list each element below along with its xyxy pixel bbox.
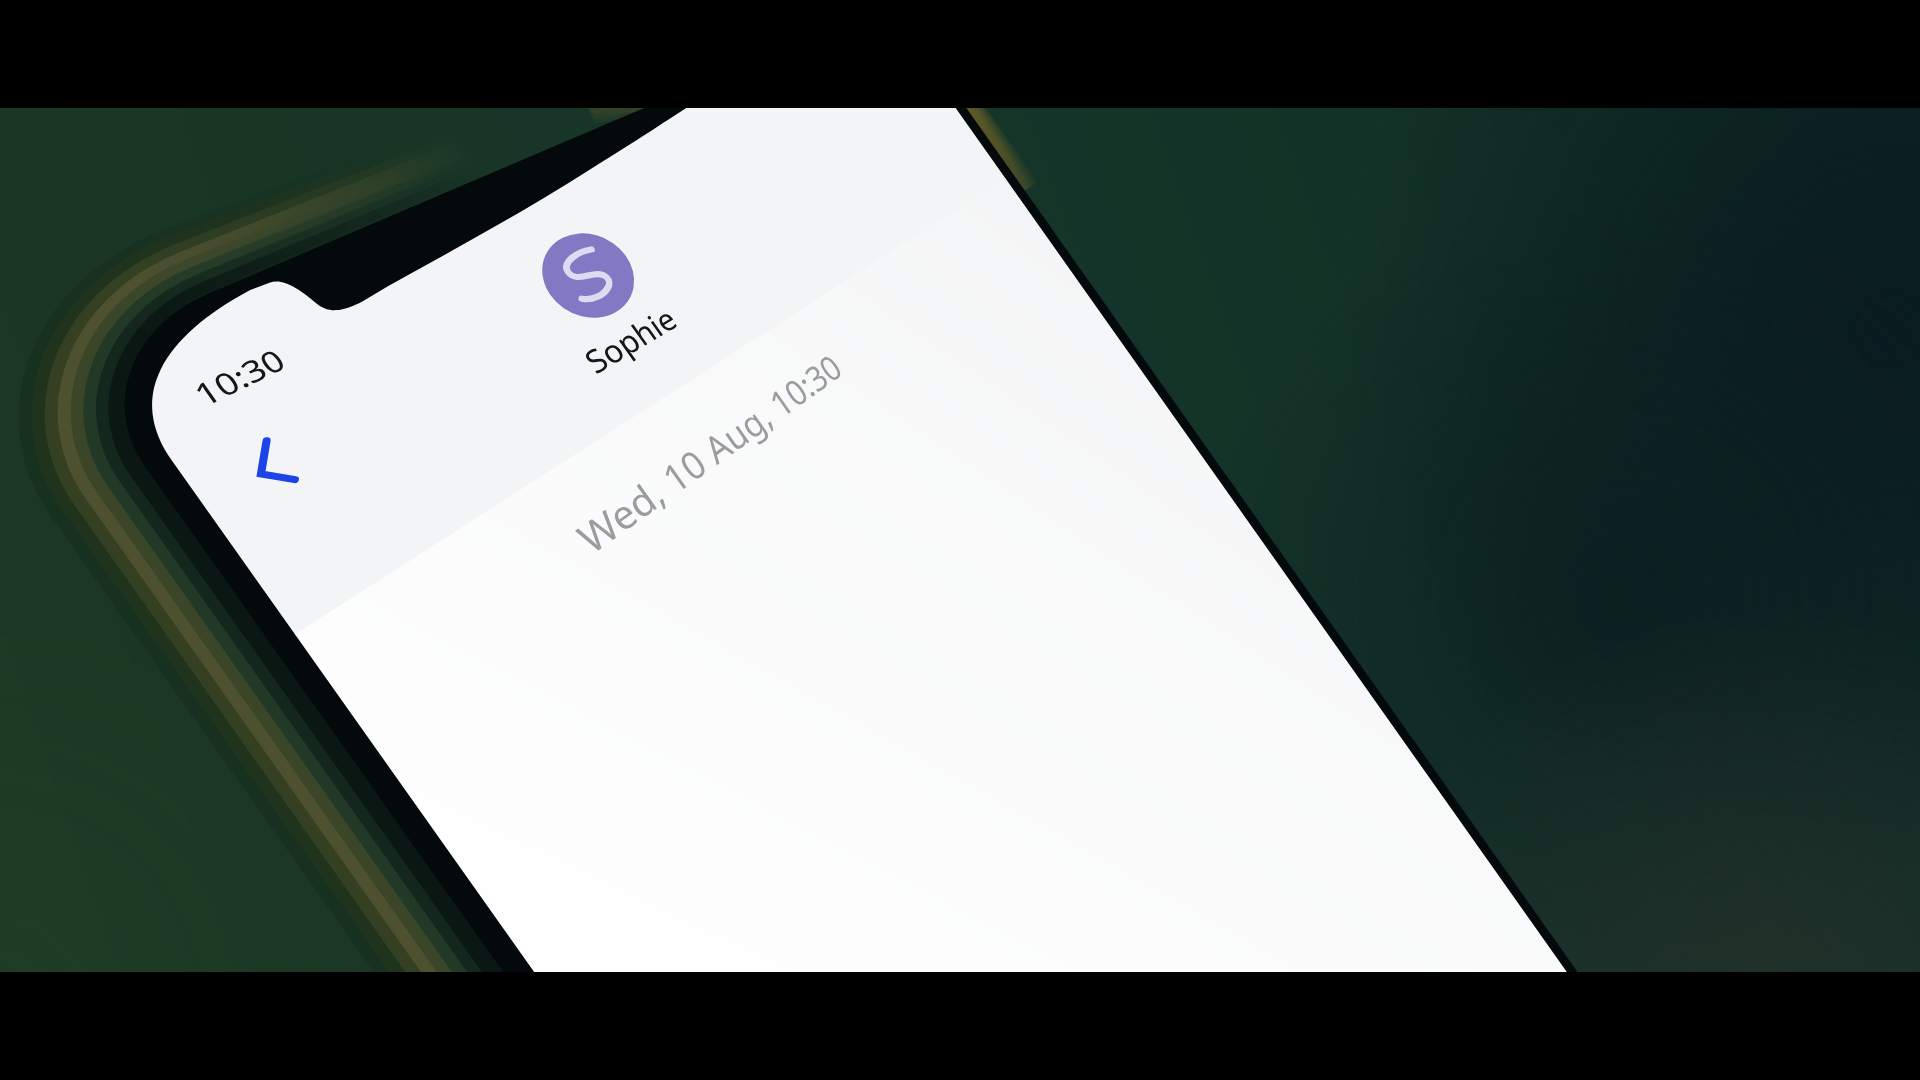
button[interactable]: Chat with Sophie: [0, 0, 1920, 1080]
